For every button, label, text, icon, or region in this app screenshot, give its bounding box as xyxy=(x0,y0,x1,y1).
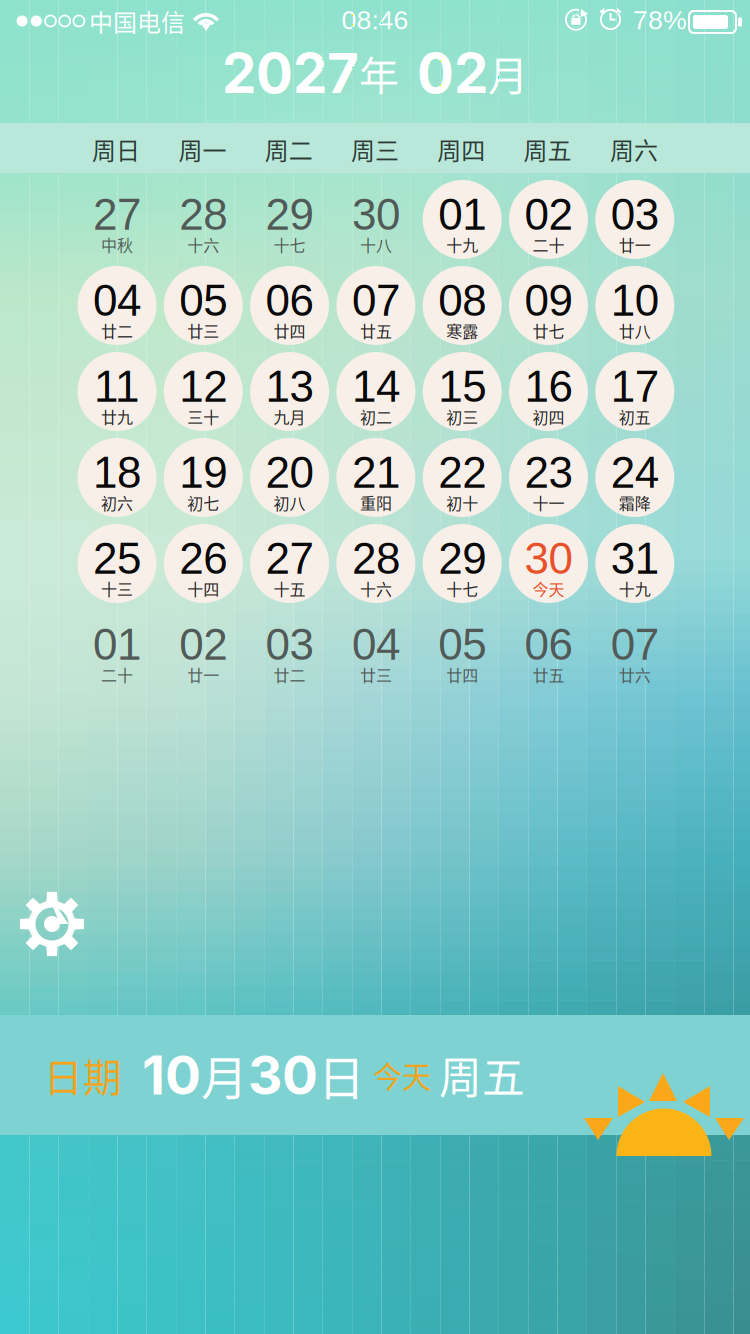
button[interactable]: 04 xyxy=(333,584,419,670)
button[interactable]: 25 xyxy=(74,498,160,584)
staticText: 10 xyxy=(611,276,659,325)
button[interactable]: 23 xyxy=(505,412,592,498)
staticText: 十五 xyxy=(274,577,306,600)
staticText: 廿七 xyxy=(532,319,564,342)
staticText: 周一 xyxy=(178,132,226,166)
button[interactable]: 02 xyxy=(160,584,246,670)
staticText: 初八 xyxy=(274,491,306,514)
button[interactable]: 22 xyxy=(419,412,505,498)
staticText: 十四 xyxy=(187,577,219,600)
button[interactable]: 31 xyxy=(592,498,678,584)
button[interactable]: 09 xyxy=(505,240,592,326)
staticText: 廿四 xyxy=(274,319,306,342)
staticText: 廿三 xyxy=(360,663,392,686)
button[interactable]: 06 xyxy=(246,240,333,326)
staticText: 29 xyxy=(266,190,314,239)
staticText: 17 xyxy=(611,362,659,411)
staticText: 14 xyxy=(352,362,400,411)
staticText: 23 xyxy=(524,448,572,497)
button[interactable]: 06 xyxy=(505,584,592,670)
staticText: 07 xyxy=(611,620,659,669)
button[interactable]: 11 xyxy=(74,326,160,412)
staticText: 30 xyxy=(524,534,572,583)
staticText: 26 xyxy=(179,534,227,583)
button[interactable]: 21 xyxy=(333,412,419,498)
staticText: 廿二 xyxy=(274,663,306,686)
staticText: 三十 xyxy=(187,405,219,428)
button[interactable]: 28 xyxy=(333,498,419,584)
button[interactable]: 12 xyxy=(160,326,246,412)
staticText: 09 xyxy=(524,276,572,325)
button[interactable]: 05 xyxy=(160,240,246,326)
staticText: 九月 xyxy=(274,405,306,428)
button[interactable]: 08 xyxy=(419,240,505,326)
staticText: 28 xyxy=(179,190,227,239)
button[interactable]: Settings xyxy=(0,0,750,1334)
staticText: 今天 xyxy=(532,577,564,600)
staticText: 19 xyxy=(179,448,227,497)
button[interactable]: 03 xyxy=(592,154,678,240)
staticText: 周五 xyxy=(524,132,572,166)
button[interactable]: 30 xyxy=(505,498,592,584)
staticText: 31 xyxy=(611,534,659,583)
staticText: 78% xyxy=(633,5,687,35)
staticText: 重阳 xyxy=(360,491,392,514)
button[interactable]: 01 xyxy=(419,154,505,240)
staticText: 日期 xyxy=(44,1047,122,1103)
staticText: 十九 xyxy=(619,577,651,600)
button[interactable]: 19 xyxy=(160,412,246,498)
staticText: 06 xyxy=(524,620,572,669)
staticText: 廿一 xyxy=(187,663,219,686)
button[interactable]: 02 xyxy=(505,154,592,240)
staticText: 十三 xyxy=(101,577,133,600)
button[interactable]: 27 xyxy=(246,498,333,584)
button[interactable]: 16 xyxy=(505,326,592,412)
button[interactable]: 05 xyxy=(419,584,505,670)
staticText: 10 xyxy=(142,1043,201,1107)
button[interactable]: 07 xyxy=(333,240,419,326)
staticText: 十一 xyxy=(532,491,564,514)
staticText: 01 xyxy=(93,620,141,669)
staticText: 初四 xyxy=(532,405,564,428)
staticText: 11 xyxy=(94,362,140,411)
staticText: 06 xyxy=(266,276,314,325)
staticText: 周六 xyxy=(610,132,658,166)
button[interactable]: 29 xyxy=(246,154,333,240)
button[interactable]: 14 xyxy=(333,326,419,412)
button[interactable]: 17 xyxy=(592,326,678,412)
staticText: 二十 xyxy=(101,663,133,686)
staticText: 初五 xyxy=(619,405,651,428)
button[interactable]: 29 xyxy=(419,498,505,584)
staticText: 25 xyxy=(93,534,141,583)
staticText: 20 xyxy=(266,448,314,497)
staticText: 12 xyxy=(179,362,227,411)
button[interactable]: 07 xyxy=(592,584,678,670)
button[interactable]: 04 xyxy=(74,240,160,326)
button[interactable]: 24 xyxy=(592,412,678,498)
button[interactable]: 18 xyxy=(74,412,160,498)
button[interactable]: 15 xyxy=(419,326,505,412)
button[interactable]: 13 xyxy=(246,326,333,412)
staticText: 年 xyxy=(359,44,399,102)
button[interactable]: 03 xyxy=(246,584,333,670)
button[interactable]: 28 xyxy=(160,154,246,240)
staticText: 月 xyxy=(488,44,528,102)
button[interactable]: 10 xyxy=(592,240,678,326)
staticText: 十八 xyxy=(360,233,392,256)
staticText: 廿九 xyxy=(101,405,133,428)
staticText: 周日 xyxy=(92,132,140,166)
button[interactable]: 01 xyxy=(74,584,160,670)
staticText: 初二 xyxy=(360,405,392,428)
staticText: 08 xyxy=(438,276,486,325)
button[interactable]: 20 xyxy=(246,412,333,498)
staticText: 廿四 xyxy=(446,663,478,686)
staticText: 周二 xyxy=(265,132,313,166)
staticText: 周五 xyxy=(439,1044,525,1106)
button[interactable]: 27 xyxy=(74,154,160,240)
staticText: 30 xyxy=(352,190,400,239)
staticText: 周四 xyxy=(437,132,485,166)
button[interactable]: 30 xyxy=(333,154,419,240)
button[interactable]: 26 xyxy=(160,498,246,584)
